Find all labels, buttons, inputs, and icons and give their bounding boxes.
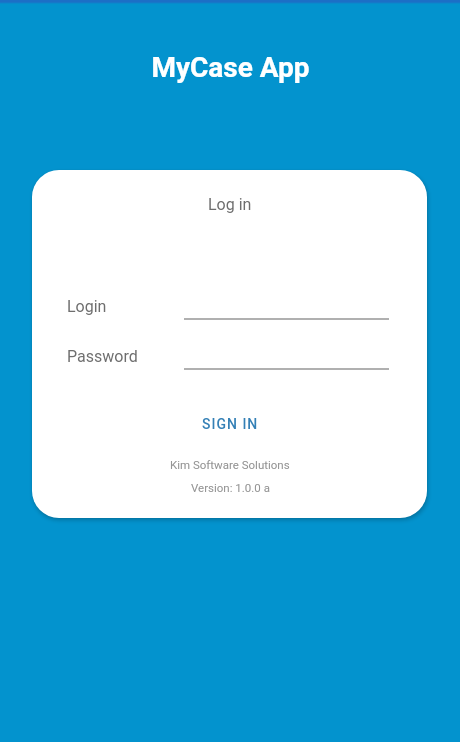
staticText: SIGN IN bbox=[202, 416, 259, 432]
staticText: Kim Software Solutions bbox=[170, 458, 290, 471]
staticText: Version: 1.0.0 a bbox=[191, 481, 270, 494]
staticText: MyCase App bbox=[151, 51, 310, 84]
button[interactable]: Password input field bbox=[184, 342, 389, 370]
staticText: Login bbox=[67, 297, 107, 316]
button[interactable]: SIGN IN bbox=[188, 409, 273, 439]
button[interactable]: Login input field bbox=[184, 292, 389, 320]
staticText: Password bbox=[67, 347, 138, 366]
staticText: Log in bbox=[208, 195, 252, 214]
